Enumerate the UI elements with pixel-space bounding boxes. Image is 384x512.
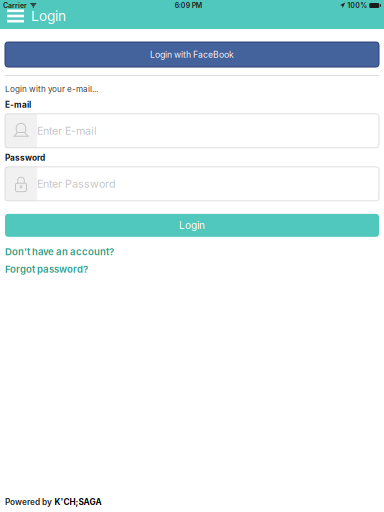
staticText: Login with FaceBook bbox=[150, 49, 234, 60]
button[interactable]: Don't have an account? bbox=[5, 246, 379, 257]
staticText: Login with your e-mail... bbox=[5, 84, 98, 94]
button[interactable]: Forgot password? bbox=[5, 263, 379, 275]
staticText: Forgot password? bbox=[5, 263, 88, 275]
staticText: Carrier bbox=[3, 1, 27, 10]
staticText: K'CH;SAGA bbox=[54, 497, 101, 507]
staticText: 6:09 PM bbox=[175, 1, 202, 10]
staticText: Password bbox=[5, 153, 45, 163]
button[interactable]: Enter Password bbox=[5, 167, 379, 201]
staticText: Powered by bbox=[5, 497, 52, 507]
button[interactable]: Login with FaceBook bbox=[5, 42, 379, 67]
staticText: Login bbox=[31, 8, 66, 24]
staticText: Enter E-mail bbox=[37, 124, 97, 137]
staticText: E-mail bbox=[5, 100, 31, 110]
button[interactable]: Login bbox=[5, 214, 379, 237]
staticText: Login bbox=[179, 219, 205, 231]
staticText: Don't have an account? bbox=[5, 246, 114, 257]
staticText: Enter Password bbox=[37, 177, 116, 190]
button[interactable]: Menu bbox=[7, 8, 24, 24]
staticText: 100% bbox=[347, 1, 367, 10]
button[interactable]: Enter E-mail bbox=[5, 114, 379, 148]
